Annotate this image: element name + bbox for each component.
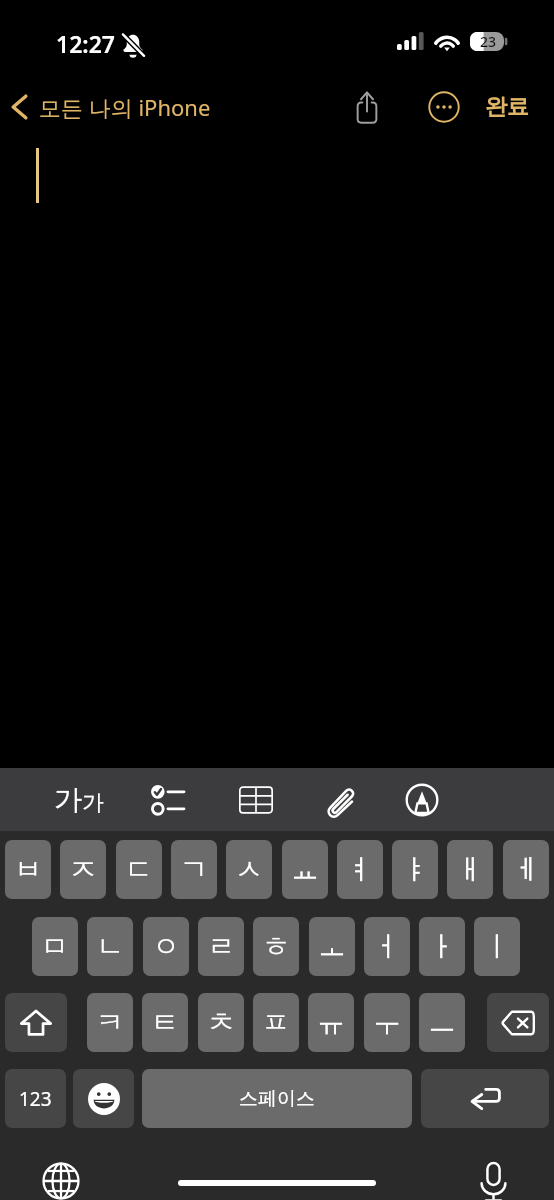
staticText: ㅌ [151,1005,179,1040]
staticText: ㅇ [152,929,180,964]
button[interactable]: Checklist [138,768,198,831]
staticText: ㅓ [373,929,401,964]
button[interactable]: ㅑ [392,840,438,899]
button[interactable]: ㅠ [308,993,354,1052]
button[interactable]: ㅕ [337,840,383,899]
button[interactable]: More options [421,84,467,130]
button[interactable]: ㅓ [364,917,410,976]
button[interactable]: Share [344,84,390,130]
button[interactable]: ㅅ [226,840,272,899]
button[interactable]: ㅛ [282,840,328,899]
button[interactable]: ㅏ [419,917,465,976]
button[interactable]: Attachment [312,768,372,831]
button[interactable]: Return [421,1069,549,1128]
button[interactable]: ㅁ [32,917,78,976]
button[interactable]: 가 [36,768,122,831]
button[interactable]: Table [226,768,286,831]
staticText: 23 [480,32,497,51]
staticText: 완료 [485,93,529,121]
button[interactable]: ㅗ [309,917,355,976]
button[interactable]: ㄴ [87,917,133,976]
button[interactable]: ㄹ [198,917,244,976]
staticText: ㅏ [428,929,456,964]
staticText: ㅎ [262,929,290,964]
button[interactable]: ㅜ [364,993,410,1052]
staticText: ㅁ [41,929,69,964]
button[interactable]: ㅐ [447,840,493,899]
button[interactable]: ㅈ [60,840,106,899]
staticText: ㅅ [235,852,263,887]
button[interactable]: 완료 [481,84,533,130]
button[interactable]: Markup [392,768,452,831]
button[interactable]: 스페이스 [142,1069,412,1128]
button[interactable]: ㅎ [253,917,299,976]
staticText: ㅐ [456,852,484,887]
button[interactable]: ㄷ [116,840,162,899]
button[interactable]: ㅋ [87,993,133,1052]
staticText: ㅔ [512,852,540,887]
button[interactable]: Emoji [73,1069,134,1128]
staticText: ㅣ [483,929,511,964]
staticText: ㅜ [373,1005,401,1040]
button[interactable]: ㅂ [5,840,51,899]
button[interactable]: Backspace [487,993,549,1052]
staticText: 가 [82,789,104,817]
staticText: ㄴ [96,929,124,964]
staticText: ㅛ [291,852,319,887]
button[interactable]: Change keyboard [36,1162,85,1200]
staticText: ㅕ [346,852,374,887]
button[interactable]: ㄱ [171,840,217,899]
staticText: 스페이스 [239,1087,315,1111]
staticText: ㅡ [428,1005,456,1040]
staticText: ㅠ [317,1005,345,1040]
staticText: ㅑ [401,852,429,887]
button[interactable]: ㅊ [198,993,244,1052]
button[interactable]: 123 [5,1069,66,1128]
staticText: 가 [54,782,82,817]
button[interactable]: ㅔ [503,840,549,899]
staticText: 123 [19,1086,52,1112]
staticText: ㅗ [318,929,346,964]
staticText: ㄱ [180,852,208,887]
staticText: ㅈ [69,852,97,887]
button[interactable]: ㅍ [253,993,299,1052]
staticText: ㄷ [125,852,153,887]
button[interactable]: ㅡ [419,993,465,1052]
staticText: 모든 나의 iPhone [39,92,211,122]
staticText: ㅂ [14,852,42,887]
staticText: ㅊ [207,1005,235,1040]
button[interactable]: Shift [5,993,67,1052]
button[interactable]: ㅇ [143,917,189,976]
button[interactable]: ㅌ [142,993,188,1052]
staticText: ㅋ [96,1005,124,1040]
button[interactable]: 모든 나의 iPhone [9,85,211,129]
button[interactable]: ㅣ [474,917,520,976]
staticText: 12:27 [56,28,115,59]
button[interactable]: Dictation [469,1161,518,1200]
staticText: ㅍ [262,1005,290,1040]
staticText: ㄹ [207,929,235,964]
